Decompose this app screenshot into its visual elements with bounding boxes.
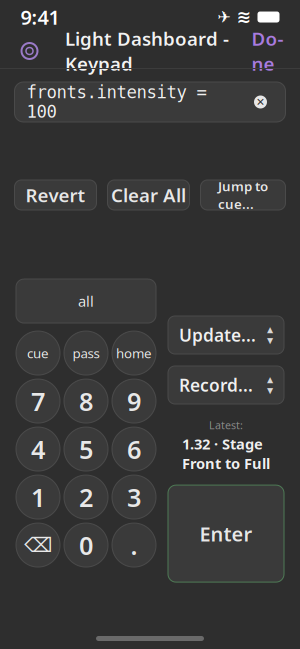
- staticText: cue: [27, 344, 49, 362]
- button[interactable]: 5: [64, 427, 108, 471]
- button[interactable]: Settings: [12, 34, 46, 68]
- staticText: Update...: [179, 323, 256, 346]
- staticText: 7: [31, 384, 45, 418]
- staticText: Done: [251, 26, 283, 76]
- staticText: 6: [127, 432, 141, 466]
- staticText: 0: [79, 528, 93, 562]
- button[interactable]: Clear text: [247, 89, 273, 115]
- staticText: 9:41: [20, 4, 59, 30]
- button[interactable]: Clear All: [107, 180, 189, 210]
- staticText: 1.32 · Stage Front to Full: [182, 434, 270, 473]
- staticText: Latest:: [209, 418, 243, 432]
- button[interactable]: 9: [112, 379, 156, 423]
- button[interactable]: 4: [16, 427, 60, 471]
- staticText: ▲: [267, 325, 273, 334]
- button[interactable]: 1: [16, 475, 60, 519]
- staticText: Revert: [25, 183, 85, 207]
- button[interactable]: Revert: [14, 180, 96, 210]
- button[interactable]: all: [16, 279, 156, 323]
- button[interactable]: 2: [64, 475, 108, 519]
- button[interactable]: 7: [16, 379, 60, 423]
- staticText: ≋: [236, 7, 251, 27]
- staticText: 8: [79, 384, 93, 418]
- staticText: pass: [72, 344, 99, 362]
- staticText: .: [130, 528, 137, 562]
- staticText: Jump to cue...: [218, 177, 268, 213]
- staticText: 9: [127, 384, 141, 418]
- staticText: Enter: [199, 520, 252, 547]
- button[interactable]: .: [112, 523, 156, 567]
- staticText: Clear All: [111, 183, 186, 207]
- button[interactable]: Enter: [168, 485, 284, 582]
- button[interactable]: home: [112, 331, 156, 375]
- staticText: ▲: [267, 375, 273, 384]
- button[interactable]: cue: [16, 331, 60, 375]
- staticText: 1: [31, 480, 45, 514]
- staticText: 4: [31, 432, 45, 466]
- button[interactable]: 0: [64, 523, 108, 567]
- staticText: fronts.intensity = 100: [26, 82, 206, 122]
- button[interactable]: pass: [64, 331, 108, 375]
- staticText: all: [78, 291, 94, 311]
- button[interactable]: 8: [64, 379, 108, 423]
- staticText: home: [116, 344, 152, 362]
- button[interactable]: Jump to cue...: [200, 180, 285, 210]
- button[interactable]: 6: [112, 427, 156, 471]
- staticText: Light Dashboard - Keypad: [65, 26, 229, 76]
- staticText: 5: [79, 432, 93, 466]
- staticText: ✈: [217, 8, 230, 26]
- staticText: 3: [127, 480, 141, 514]
- staticText: ▼: [267, 336, 273, 345]
- staticText: 2: [79, 480, 93, 514]
- staticText: ✕: [256, 96, 265, 108]
- staticText: Record...: [179, 373, 253, 396]
- staticText: ⌫: [24, 534, 52, 556]
- button[interactable]: Update...: [168, 316, 284, 354]
- button[interactable]: Delete: [16, 523, 60, 567]
- staticText: ▼: [267, 386, 273, 395]
- button[interactable]: 3: [112, 475, 156, 519]
- button[interactable]: Record...: [168, 366, 284, 404]
- button[interactable]: Done: [247, 34, 287, 68]
